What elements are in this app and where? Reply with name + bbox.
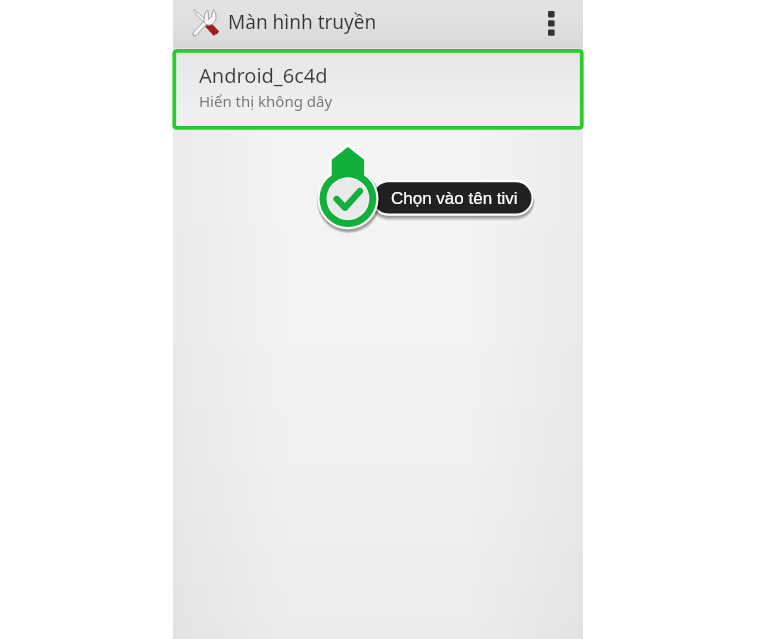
staticText: Android_6c4d (199, 62, 328, 89)
button[interactable]: More options (527, 0, 575, 48)
button[interactable]: Android_6c4d (173, 48, 583, 127)
staticText: Chọn vào tên tivi (391, 189, 518, 208)
staticText: Màn hình truyền (228, 9, 377, 35)
staticText: Hiển thị không dây (199, 91, 333, 111)
